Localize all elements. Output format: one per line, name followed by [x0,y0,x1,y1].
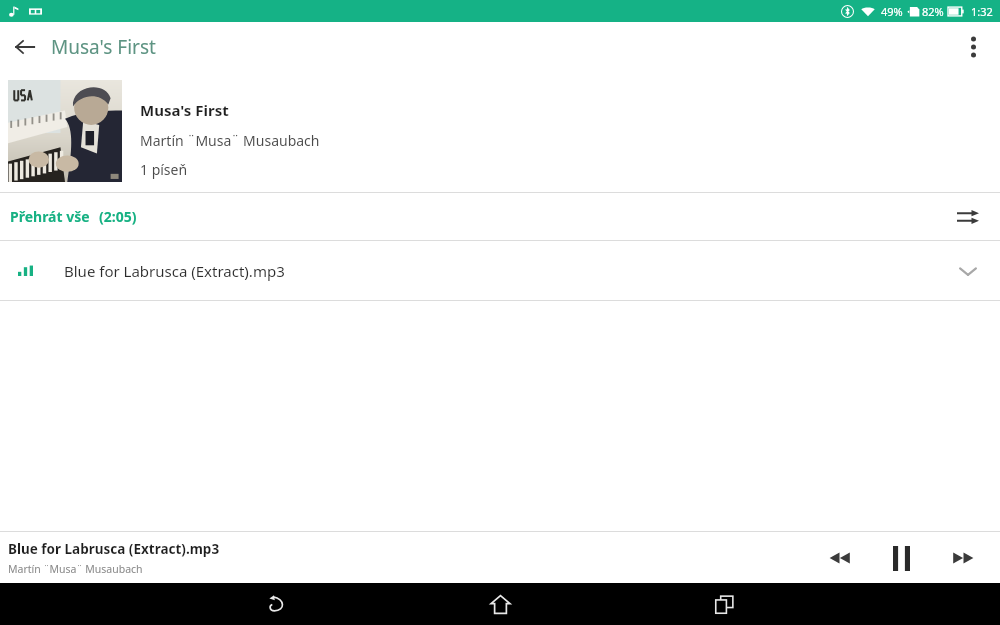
button[interactable]: Previous [816,535,862,581]
staticText: Blue for Labrusca (Extract).mp3 [8,540,220,558]
staticText: 82% [922,4,944,19]
staticText: Blue for Labrusca (Extract).mp3 [64,261,285,281]
staticText: Musa's First [140,100,229,120]
button[interactable]: Musa's First [0,72,1000,192]
staticText: 1 píseň [140,160,188,179]
button[interactable]: Back [253,583,299,625]
button[interactable]: Next [940,535,986,581]
staticText: 1:32 [971,4,993,19]
staticText: 49% [881,4,903,19]
button[interactable]: Home [477,583,523,625]
staticText: Martín ¨Musa¨ Musaubach [8,562,143,576]
button[interactable]: Blue for Labrusca (Extract).mp3 [0,241,1000,300]
button[interactable]: Play order [948,197,988,237]
button[interactable]: Blue for Labrusca (Extract).mp3 [0,532,1000,583]
staticText: Přehrát vše [10,207,90,226]
button[interactable]: Recent apps [701,583,747,625]
staticText: Martín ¨Musa¨ Musaubach [140,131,320,150]
button[interactable]: Back [6,28,44,66]
staticText: (2:05) [99,207,137,226]
button[interactable]: Expand [948,251,988,291]
button[interactable]: Přehrát vše [0,193,1000,240]
button[interactable]: Pause [876,533,926,583]
staticText: Musa's First [51,34,156,60]
button[interactable]: More options [951,25,995,69]
